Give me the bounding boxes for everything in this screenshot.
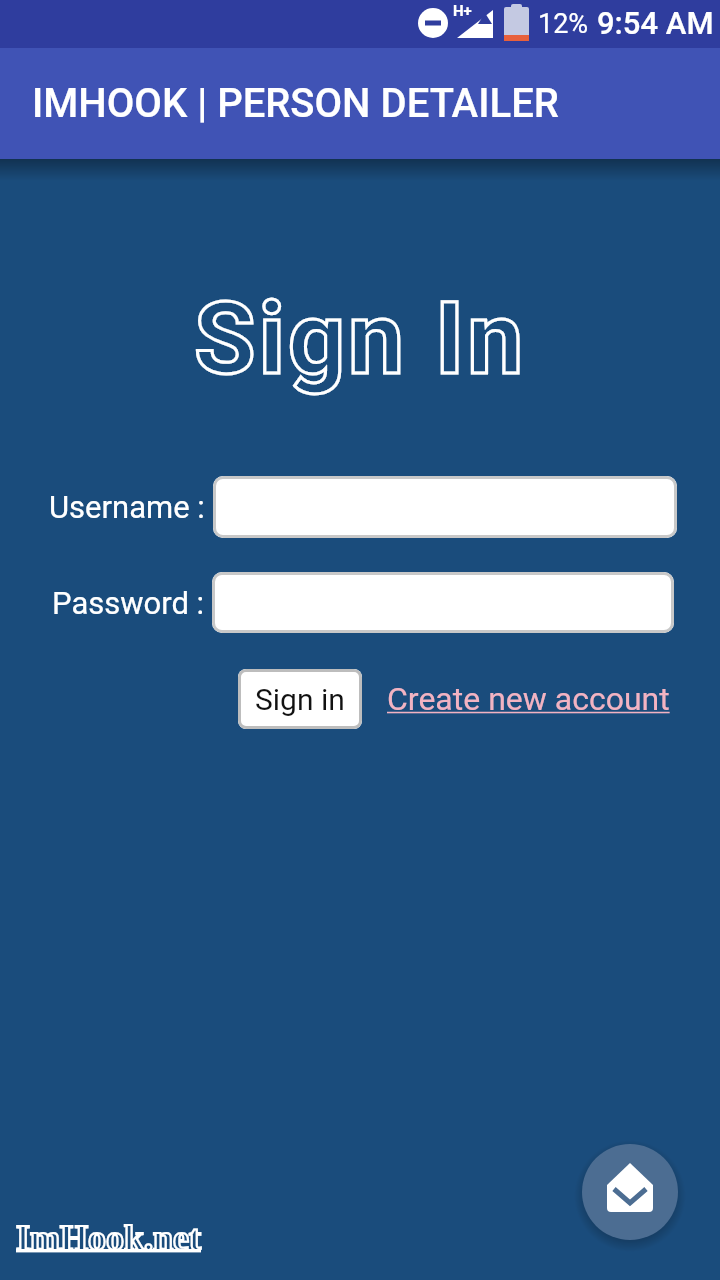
button[interactable]: Create new account [387, 669, 670, 729]
staticText: H+ [453, 2, 472, 20]
staticText: 9:54 AM [597, 5, 714, 41]
button[interactable]: ImHook.net [16, 1218, 202, 1258]
button[interactable] [213, 476, 677, 538]
staticText: Sign In [194, 280, 527, 397]
button[interactable] [212, 572, 674, 633]
staticText: 12% [538, 8, 589, 40]
staticText: Username : [49, 489, 205, 525]
button[interactable]: Sign in [238, 669, 362, 729]
staticText: Sign in [255, 682, 345, 717]
staticText: Password : [52, 585, 205, 621]
staticText: IMHOOK | PERSON DETAILER [32, 80, 559, 127]
button[interactable] [582, 1144, 678, 1240]
staticText: ImHook.net [16, 1218, 202, 1258]
staticText: Create new account [387, 680, 670, 718]
